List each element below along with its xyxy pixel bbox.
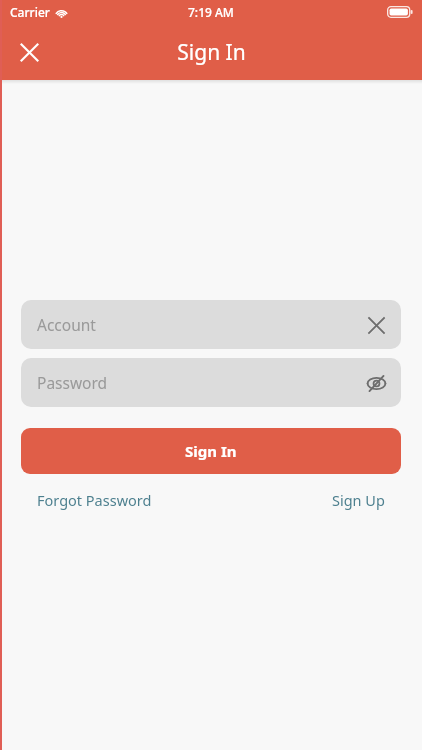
button[interactable]: Sign In bbox=[21, 428, 401, 474]
staticText: Sign In bbox=[185, 441, 237, 461]
staticText: Forgot Password bbox=[37, 490, 152, 510]
staticText: 7:19 AM bbox=[188, 4, 234, 20]
staticText: Carrier bbox=[10, 4, 50, 20]
button[interactable]: Close bbox=[11, 34, 47, 70]
button[interactable]: Sign Up bbox=[316, 483, 401, 517]
button[interactable]: Forgot Password bbox=[21, 483, 168, 517]
button[interactable]: Password bbox=[21, 358, 401, 407]
staticText: Account bbox=[37, 314, 96, 335]
staticText: Sign Up bbox=[332, 490, 385, 510]
button[interactable]: Show password bbox=[359, 366, 393, 400]
staticText: Password bbox=[37, 372, 108, 393]
button[interactable]: Clear account bbox=[359, 308, 393, 342]
staticText: Sign In bbox=[177, 38, 246, 67]
button[interactable]: Account bbox=[21, 300, 401, 349]
